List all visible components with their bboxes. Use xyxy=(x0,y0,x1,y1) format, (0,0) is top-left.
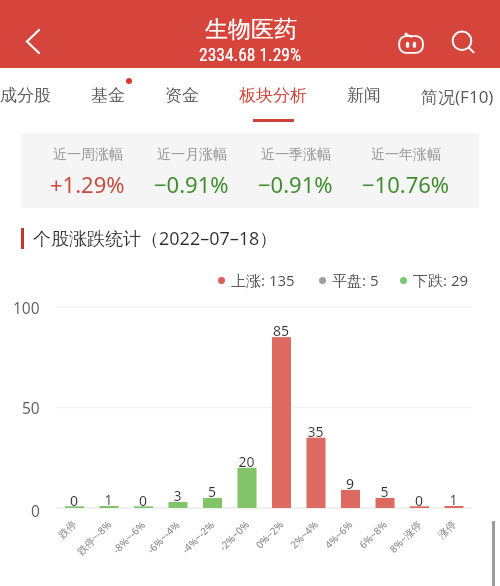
staticText: 近一周涨幅 xyxy=(53,146,123,164)
staticText: 基金 xyxy=(91,85,125,106)
button[interactable]: Smart assistant xyxy=(385,18,437,66)
staticText: −10.76% xyxy=(362,169,450,199)
staticText: 生物医药 xyxy=(205,15,297,44)
button[interactable]: 基金 xyxy=(71,68,145,133)
staticText: 个股涨跌统计（2022–07–18） xyxy=(33,226,278,251)
staticText: 资金 xyxy=(165,85,199,106)
button[interactable]: 成分股 xyxy=(0,68,71,133)
staticText: 近一季涨幅 xyxy=(261,146,331,164)
button[interactable]: 简况(F10) xyxy=(401,68,500,133)
staticText: 新闻 xyxy=(347,85,381,106)
button[interactable]: 新闻 xyxy=(327,68,401,133)
staticText: −0.91% xyxy=(154,169,229,199)
button[interactable]: 板块分析 xyxy=(219,68,327,133)
staticText: 近一月涨幅 xyxy=(157,146,227,164)
staticText: 板块分析 xyxy=(239,85,307,106)
staticText: 上涨: 135 xyxy=(231,270,295,290)
staticText: +1.29% xyxy=(50,169,125,199)
staticText: 下跌: 29 xyxy=(413,270,469,290)
button[interactable]: 资金 xyxy=(145,68,219,133)
staticText: 平盘: 5 xyxy=(332,270,379,290)
button[interactable]: Search xyxy=(437,18,489,66)
staticText: 成分股 xyxy=(0,85,51,106)
staticText: 简况(F10) xyxy=(421,85,494,108)
staticText: 近一年涨幅 xyxy=(371,146,441,164)
staticText: 2334.68 1.29% xyxy=(199,45,302,66)
staticText: −0.91% xyxy=(258,169,333,199)
button[interactable]: Back xyxy=(0,0,54,68)
